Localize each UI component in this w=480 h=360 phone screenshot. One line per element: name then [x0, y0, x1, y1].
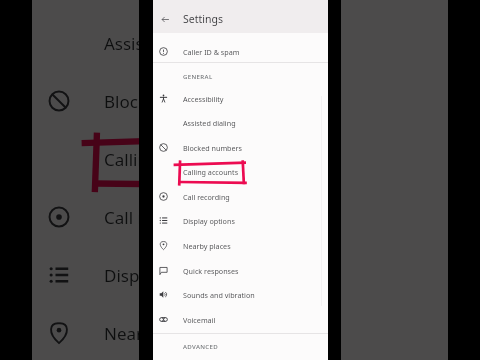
- button[interactable]: Assisted dialing: [33, 14, 446, 72]
- staticText: Assisted dialing: [183, 118, 236, 128]
- staticText: Call recording: [104, 206, 215, 229]
- button[interactable]: Blocked numbers: [33, 72, 446, 130]
- button[interactable]: Calling accounts: [33, 130, 446, 188]
- staticText: Accessibility: [183, 94, 224, 104]
- button[interactable]: Accessibility: [153, 86, 328, 111]
- button[interactable]: Nearby places: [33, 304, 446, 360]
- staticText: Blocked numbers: [104, 90, 244, 113]
- staticText: Call recording: [183, 192, 230, 202]
- staticText: Voicemail: [183, 315, 216, 325]
- button[interactable]: Call recording: [153, 184, 328, 209]
- button[interactable]: Display options: [33, 246, 446, 304]
- staticText: Settings: [183, 12, 223, 26]
- button[interactable]: Caller ID & spam: [153, 39, 328, 64]
- staticText: Display options: [183, 216, 235, 226]
- button[interactable]: Assisted dialing: [153, 110, 328, 135]
- staticText: ADVANCED: [183, 342, 219, 350]
- staticText: Assisted dialing: [104, 32, 229, 55]
- button[interactable]: Voicemail: [153, 307, 328, 332]
- staticText: Calling accounts: [183, 167, 239, 177]
- staticText: Calling accounts: [104, 148, 235, 171]
- button[interactable]: Blocked numbers: [153, 135, 328, 160]
- button[interactable]: Sounds and vibration: [153, 282, 328, 307]
- staticText: GENERAL: [183, 72, 213, 80]
- button[interactable]: Calling accounts: [153, 159, 328, 184]
- button[interactable]: Display options: [153, 208, 328, 233]
- staticText: Caller ID & spam: [183, 47, 240, 57]
- staticText: Quick responses: [183, 266, 239, 276]
- staticText: Sounds and vibration: [183, 290, 255, 300]
- staticText: Nearby places: [104, 322, 217, 345]
- staticText: Blocked numbers: [183, 143, 242, 153]
- button[interactable]: Quick responses: [153, 258, 328, 283]
- staticText: Nearby places: [183, 241, 231, 251]
- button[interactable]: Back: [154, 8, 176, 30]
- button[interactable]: Call recording: [33, 188, 446, 246]
- button[interactable]: Accessibility: [33, 0, 446, 14]
- button[interactable]: Nearby places: [153, 233, 328, 258]
- staticText: Display options: [104, 264, 227, 287]
